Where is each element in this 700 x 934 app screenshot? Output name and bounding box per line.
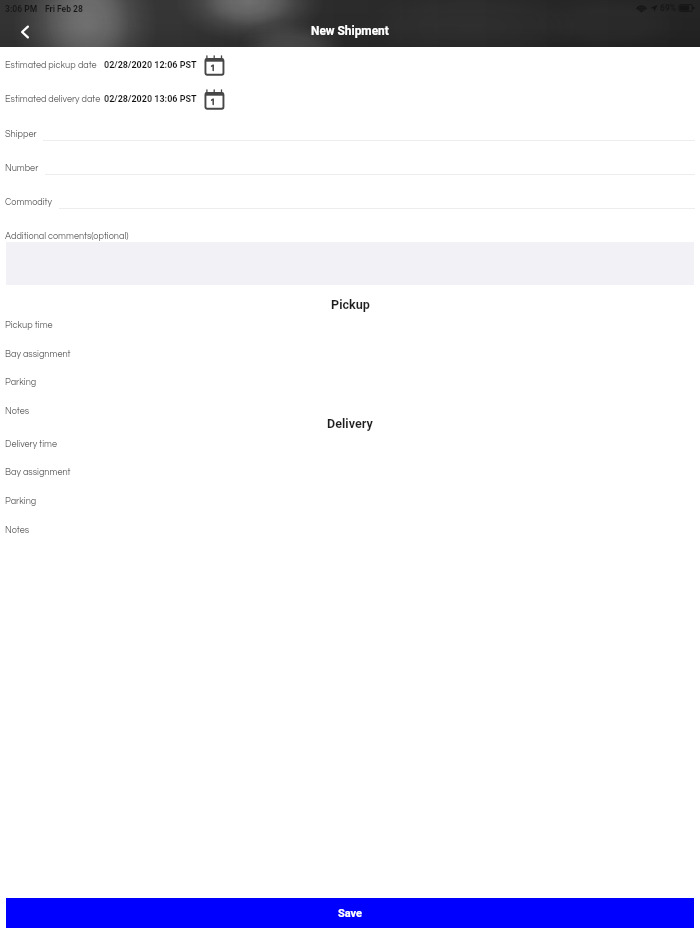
button[interactable]: Additional comments(optional): [0, 224, 700, 248]
button[interactable]: Notes: [0, 518, 700, 542]
staticText: Parking: [5, 378, 37, 387]
staticText: Pickup: [331, 297, 370, 312]
staticText: Number: [5, 164, 39, 173]
button[interactable]: Delivery time: [0, 432, 700, 456]
staticText: Shipper: [5, 130, 37, 139]
staticText: Estimated pickup date: [5, 61, 97, 70]
staticText: Fri Feb 28: [45, 4, 83, 14]
button[interactable]: Notes: [0, 399, 700, 423]
staticText: Delivery time: [5, 440, 57, 449]
button[interactable]: Estimated delivery date: [0, 87, 700, 111]
button[interactable]: Estimated pickup date: [0, 53, 700, 77]
button[interactable]: Commodity: [0, 190, 700, 214]
button[interactable]: Bay assignment: [0, 460, 700, 484]
button[interactable]: Pickup time: [0, 313, 700, 337]
staticText: Parking: [5, 497, 37, 506]
staticText: New Shipment: [311, 24, 389, 38]
staticText: Notes: [5, 526, 30, 535]
staticText: Commodity: [5, 198, 53, 207]
staticText: 69%: [660, 3, 677, 13]
button[interactable]: Back: [16, 23, 34, 41]
button[interactable]: Shipper: [0, 122, 700, 146]
button[interactable]: Parking: [0, 370, 700, 394]
staticText: Bay assignment: [5, 468, 71, 477]
staticText: Additional comments(optional): [5, 232, 129, 241]
staticText: 02/28/2020 13:06 PST: [104, 94, 197, 105]
staticText: Notes: [5, 407, 30, 416]
staticText: Delivery: [327, 416, 373, 431]
button[interactable]: Number: [0, 156, 700, 180]
staticText: 3:06 PM: [5, 4, 38, 14]
staticText: Pickup time: [5, 321, 53, 330]
staticText: Bay assignment: [5, 350, 71, 359]
button[interactable]: Parking: [0, 489, 700, 513]
staticText: Estimated delivery date: [5, 95, 101, 104]
staticText: Save: [338, 907, 363, 920]
button[interactable]: Bay assignment: [0, 342, 700, 366]
button[interactable]: Save: [6, 898, 694, 928]
staticText: 02/28/2020 12:06 PST: [104, 60, 197, 71]
